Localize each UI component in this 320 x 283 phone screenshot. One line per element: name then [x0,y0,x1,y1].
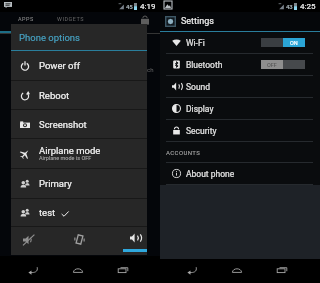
staticText: Reboot [39,90,70,101]
staticText: 4:19 [140,2,156,11]
staticText: Security [186,126,217,136]
staticText: Airplane mode [39,145,101,156]
button[interactable]: Sound on [101,227,147,255]
staticText: Display [186,104,214,114]
button[interactable]: Back [180,260,204,280]
button[interactable]: Power off [11,51,147,80]
staticText: Primary [39,178,72,189]
staticText: Bluetooth [186,60,223,70]
button[interactable]: Home [225,260,249,280]
staticText: 45 [126,3,133,10]
button[interactable]: Vibrate mode [56,227,101,255]
staticText: About phone [186,169,235,179]
staticText: Phone options [19,32,81,43]
staticText: 4:25 [300,2,316,11]
button[interactable]: Silent mode [11,227,56,255]
button[interactable]: Home [66,260,90,280]
button[interactable]: Recent apps [111,260,135,280]
staticText: WIDGETS [57,16,84,22]
button[interactable]: Back [21,260,45,280]
staticText: Screenshot [39,119,87,130]
button[interactable]: Screenshot [11,110,147,138]
button[interactable]: Sound [160,76,320,97]
staticText: Settings [181,16,214,27]
button[interactable]: Recent apps [270,260,294,280]
staticText: ACCOUNTS [166,149,201,156]
staticText: Power off [39,60,81,71]
staticText: ON [290,40,298,46]
button[interactable]: Security [160,120,320,141]
button[interactable]: Bluetooth [160,54,320,75]
staticText: OFF [267,62,277,68]
staticText: ch [147,66,154,73]
button[interactable]: Wi-Fi [160,32,320,53]
button[interactable]: Display [160,98,320,119]
button[interactable]: test [11,199,147,226]
button[interactable]: About phone [160,163,320,184]
button[interactable]: Airplane mode [11,139,147,168]
staticText: Wi-Fi [186,38,205,48]
button[interactable]: Primary [11,169,147,198]
staticText: test [39,207,56,218]
staticText: Sound [186,82,211,92]
button[interactable]: Reboot [11,81,147,109]
staticText: APPS [18,16,34,22]
staticText: 43 [286,3,293,10]
staticText: Airplane mode is OFF [39,155,92,161]
